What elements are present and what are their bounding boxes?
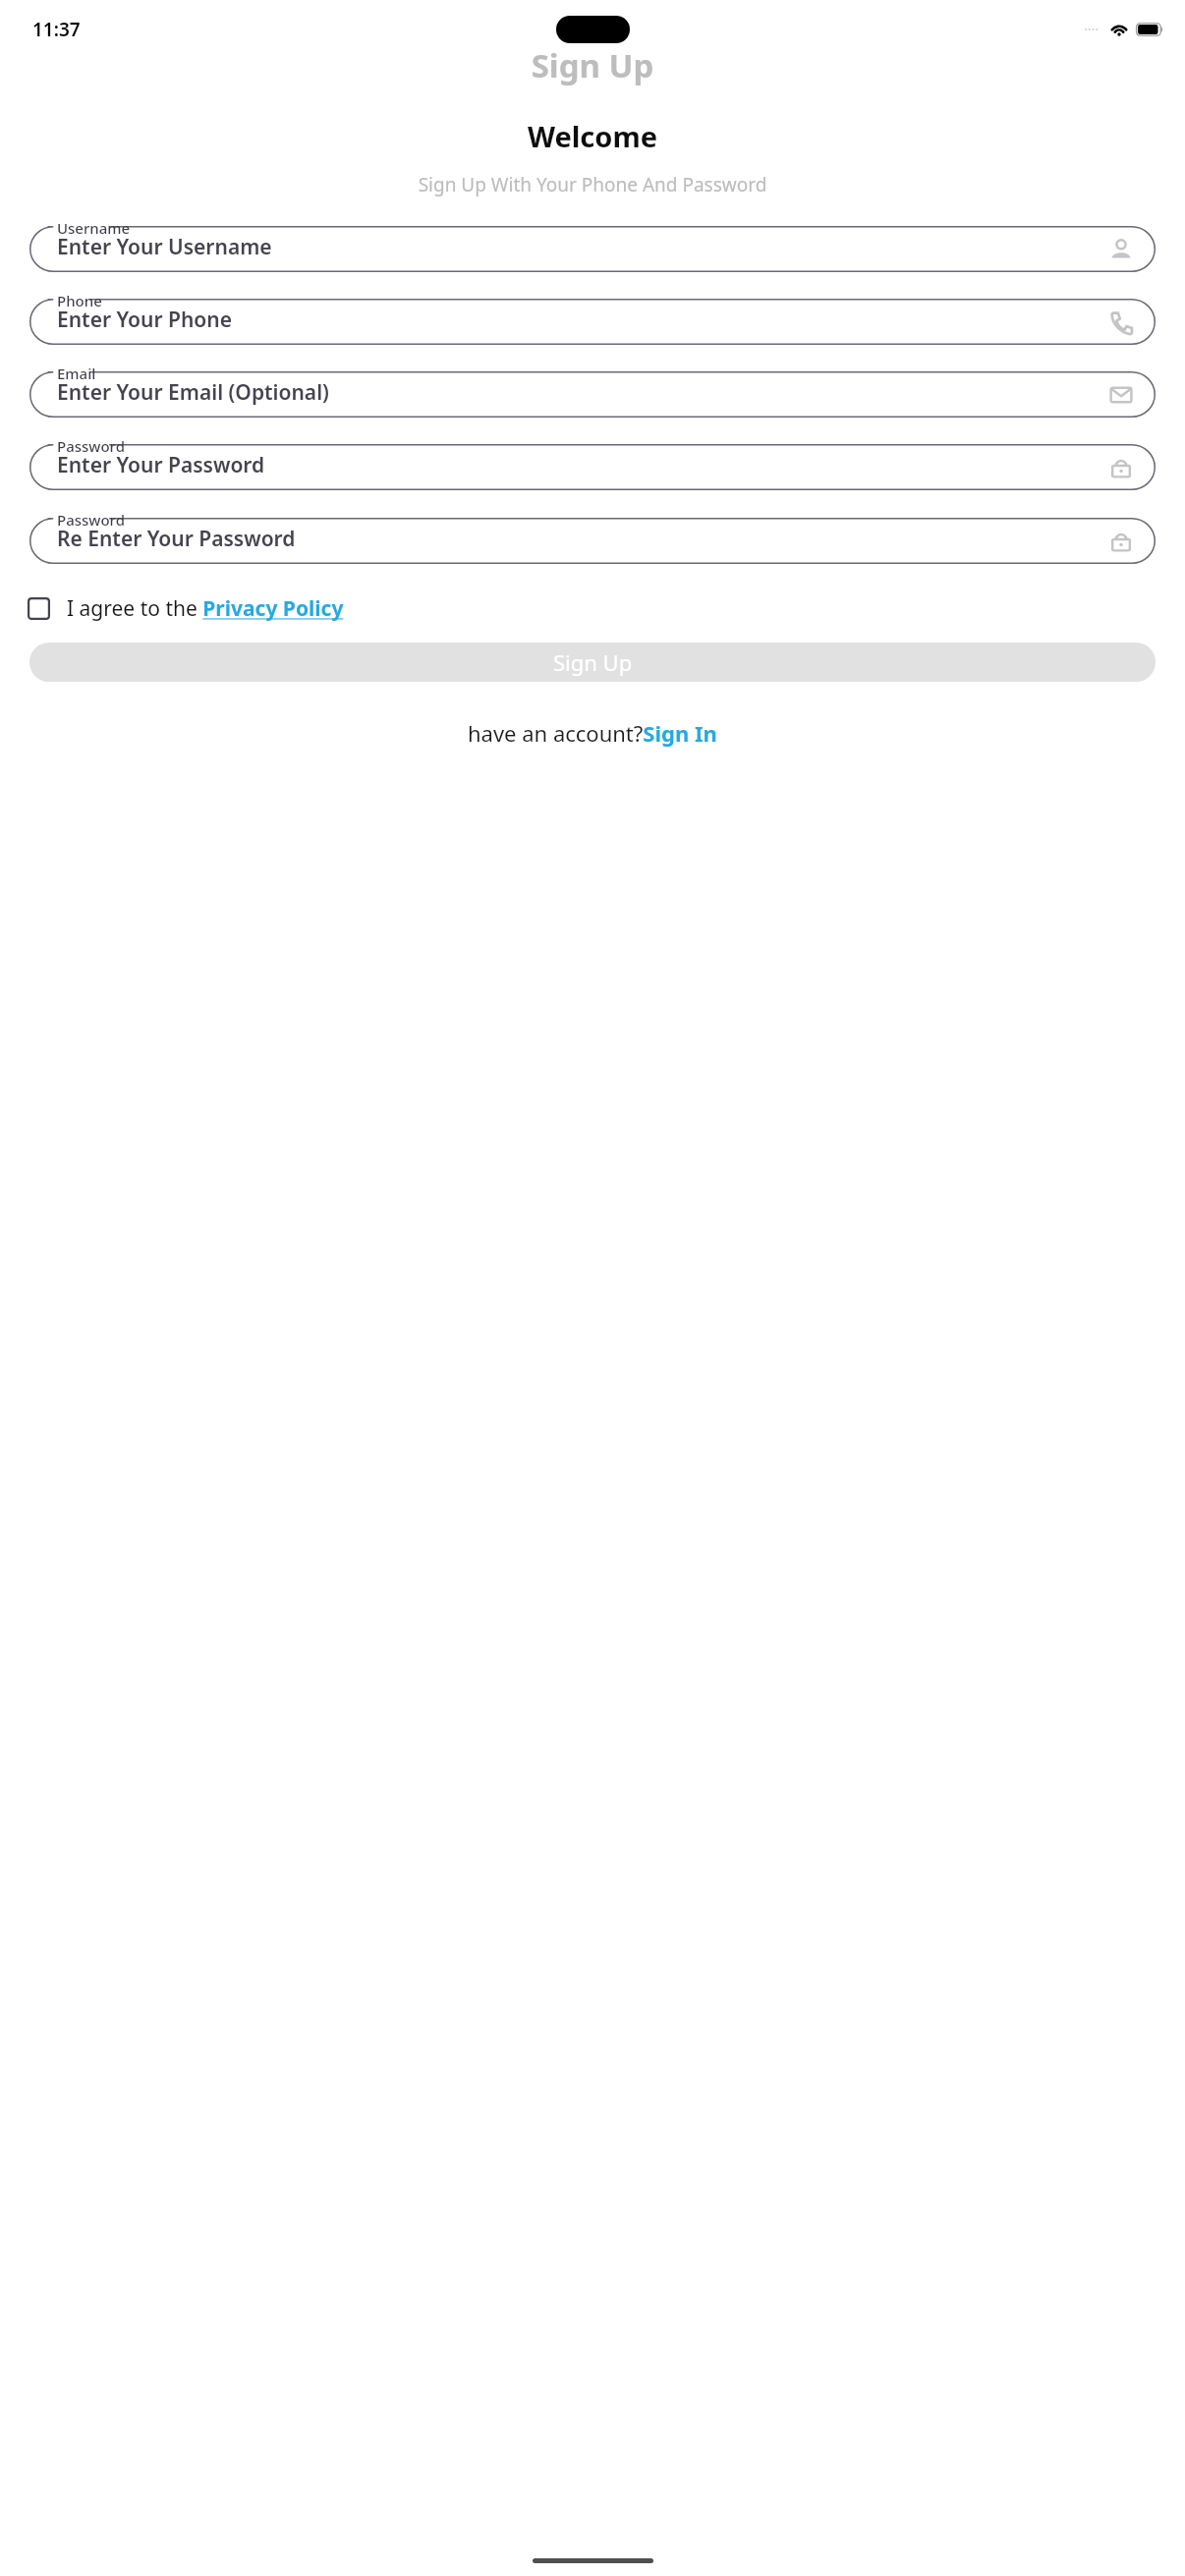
staticText: 11:37 bbox=[32, 17, 81, 42]
staticText: Email bbox=[57, 364, 96, 383]
staticText: Sign Up bbox=[0, 43, 1185, 87]
button[interactable]: I agree to the Privacy Policy bbox=[67, 594, 344, 623]
staticText: Phone bbox=[57, 291, 102, 310]
staticText: Enter Your Password bbox=[57, 451, 265, 479]
staticText: Welcome bbox=[0, 117, 1185, 155]
staticText: Password bbox=[57, 510, 125, 530]
button[interactable]: Phone bbox=[29, 292, 1156, 345]
staticText: Enter Your Username bbox=[57, 233, 272, 261]
button[interactable]: Password bbox=[29, 437, 1156, 490]
staticText: Enter Your Phone bbox=[57, 306, 232, 334]
staticText: Username bbox=[57, 218, 131, 238]
button[interactable]: Confirm password bbox=[29, 511, 1156, 564]
staticText: have an account?Sign In bbox=[468, 718, 717, 748]
staticText: Password bbox=[57, 436, 125, 456]
staticText: Enter Your Email (Optional) bbox=[57, 378, 329, 407]
staticText: I agree to the Privacy Policy bbox=[67, 594, 344, 623]
staticText: Sign Up With Your Phone And Password bbox=[0, 172, 1185, 197]
button[interactable]: have an account?Sign In bbox=[468, 718, 717, 748]
staticText: Re Enter Your Password bbox=[57, 525, 296, 553]
button[interactable]: Sign Up bbox=[29, 643, 1156, 682]
staticText: Sign Up bbox=[553, 647, 633, 677]
button[interactable]: Username bbox=[29, 219, 1156, 272]
button[interactable]: I agree to the Privacy Policy bbox=[28, 597, 50, 620]
button[interactable]: Email bbox=[29, 364, 1156, 418]
